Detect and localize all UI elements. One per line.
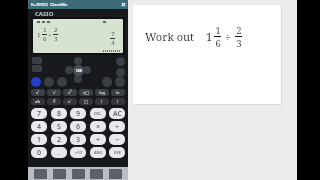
button[interactable]: □ xyxy=(79,98,93,105)
staticText: 9 xyxy=(76,109,81,119)
staticText: 5 xyxy=(57,122,62,132)
staticText: 2 xyxy=(57,135,62,145)
staticText: 3 xyxy=(76,135,81,145)
button[interactable]: ANS xyxy=(90,147,106,158)
button[interactable]: Tool 4 xyxy=(109,169,122,179)
staticText: 1 xyxy=(215,24,221,36)
button[interactable]: Tool 1 xyxy=(53,169,66,179)
button[interactable]: x□ xyxy=(79,89,93,96)
staticText: 3 xyxy=(236,37,242,49)
button[interactable]: ( xyxy=(95,98,109,105)
button[interactable]: Tool 0 xyxy=(34,169,47,179)
button[interactable]: Home xyxy=(116,57,125,66)
staticText: DEL xyxy=(94,111,102,116)
button[interactable]: Up xyxy=(74,57,82,65)
button[interactable]: a⁄b xyxy=(31,98,45,105)
staticText: log xyxy=(99,90,105,95)
staticText: 6 xyxy=(43,35,47,43)
staticText: 4 xyxy=(111,39,115,47)
button[interactable]: Function xyxy=(57,77,67,87)
staticText: 1 xyxy=(37,31,41,39)
staticText: 7 xyxy=(37,109,42,119)
staticText: 2 xyxy=(236,24,242,36)
button[interactable]: Function xyxy=(102,77,112,87)
button[interactable]: + xyxy=(90,134,106,145)
button[interactable]: Left xyxy=(65,66,73,74)
staticText: 1 xyxy=(206,29,213,44)
button[interactable]: log xyxy=(95,89,109,96)
button[interactable]: ÷ xyxy=(109,121,125,132)
staticText: ln xyxy=(116,90,120,95)
staticText: ÷ xyxy=(225,30,231,44)
button[interactable]: 2 xyxy=(51,134,67,145)
button[interactable]: Function xyxy=(44,77,54,87)
button[interactable]: ∛ xyxy=(47,98,61,105)
button[interactable]: 6 xyxy=(70,121,86,132)
button[interactable]: Shift xyxy=(31,77,41,87)
button[interactable]: − xyxy=(109,134,125,145)
button[interactable]: × xyxy=(90,121,106,132)
staticText: √ xyxy=(53,90,56,95)
staticText: . xyxy=(58,148,60,158)
button[interactable]: DEL xyxy=(90,108,106,119)
button[interactable]: Tool 2 xyxy=(72,169,85,179)
button[interactable]: 4 xyxy=(31,121,47,132)
button[interactable]: 8 xyxy=(51,108,67,119)
staticText: Work out xyxy=(145,29,194,44)
button[interactable]: 1 xyxy=(31,134,47,145)
button[interactable]: x² xyxy=(63,89,77,96)
button[interactable]: Function xyxy=(115,77,125,87)
staticText: ANS xyxy=(94,150,102,155)
staticText: EXE xyxy=(114,150,121,155)
button[interactable]: Close xyxy=(118,0,128,9)
staticText: − xyxy=(115,135,120,145)
staticText: x¹ xyxy=(36,90,40,95)
button[interactable]: AC xyxy=(109,108,125,119)
staticText: 2 xyxy=(54,26,58,34)
staticText: 3 xyxy=(54,35,58,43)
staticText: ÷ xyxy=(48,31,52,39)
button[interactable]: ) xyxy=(111,98,125,105)
button[interactable]: 3 xyxy=(70,134,86,145)
button[interactable]: Right xyxy=(83,66,91,74)
button[interactable]: 5 xyxy=(51,121,67,132)
button[interactable]: . xyxy=(51,147,67,158)
staticText: ) xyxy=(117,99,119,104)
button[interactable]: fx-991EX ClassWiz xyxy=(28,0,128,9)
button[interactable]: x⁻ xyxy=(63,98,77,105)
button[interactable]: ×10 xyxy=(70,147,86,158)
staticText: fx-991EX ClassWiz xyxy=(31,2,68,7)
staticText: 6 xyxy=(76,122,81,132)
button[interactable]: 9 xyxy=(70,108,86,119)
button[interactable]: EXE xyxy=(109,147,125,158)
staticText: a⁄b xyxy=(35,99,41,104)
button[interactable]: x¹ xyxy=(31,89,45,96)
staticText: AC xyxy=(113,109,122,119)
staticText: + xyxy=(96,135,101,145)
staticText: 0 xyxy=(37,148,42,158)
staticText: CASIO xyxy=(35,10,54,17)
staticText: 1 xyxy=(37,135,42,145)
staticText: ∛ xyxy=(53,99,56,104)
button[interactable]: √ xyxy=(47,89,61,96)
staticText: × xyxy=(96,122,101,132)
staticText: x□ xyxy=(83,90,89,95)
staticText: ×10 xyxy=(75,150,82,155)
staticText: 1 xyxy=(43,26,47,34)
button[interactable]: OK xyxy=(73,65,84,76)
button[interactable]: 0 xyxy=(31,147,47,158)
button[interactable]: Tool 3 xyxy=(90,169,103,179)
button[interactable]: Down xyxy=(74,75,82,83)
staticText: 6 xyxy=(215,37,221,49)
staticText: ÷ xyxy=(115,122,120,132)
button[interactable]: Work out xyxy=(133,5,281,104)
staticText: □ xyxy=(84,99,88,104)
staticText: ( xyxy=(101,99,103,104)
button[interactable]: ln xyxy=(111,89,125,96)
button[interactable]: 7 xyxy=(31,108,47,119)
staticText: x⁻ xyxy=(68,99,72,104)
staticText: OK xyxy=(76,68,82,73)
button[interactable]: Back xyxy=(116,68,125,77)
